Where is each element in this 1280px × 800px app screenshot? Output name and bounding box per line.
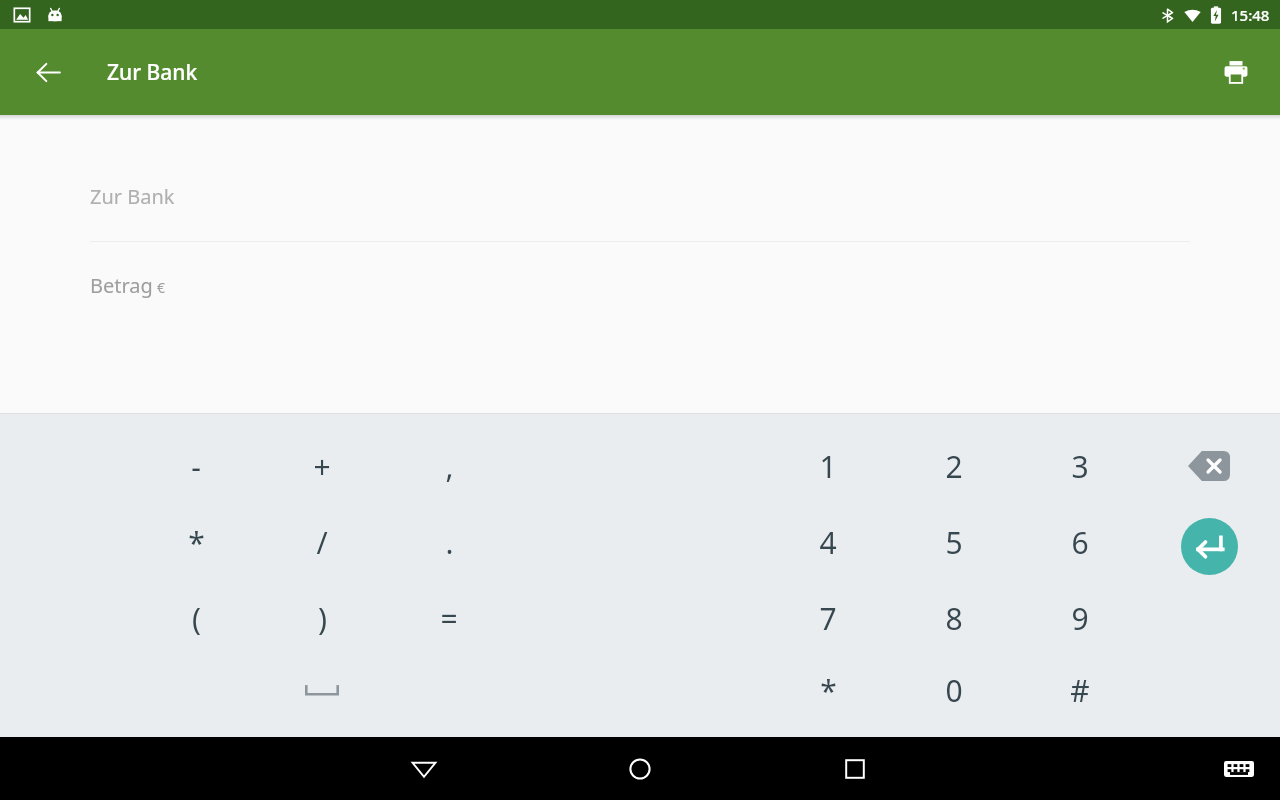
button[interactable]: Zur Bank <box>0 156 1280 236</box>
button[interactable]: ( <box>141 584 251 652</box>
button[interactable]: 6 <box>1025 508 1135 576</box>
button[interactable]: 5 <box>899 508 1009 576</box>
staticText: = <box>440 598 458 639</box>
button[interactable]: Home <box>606 737 674 800</box>
button[interactable]: 8 <box>899 584 1009 652</box>
button[interactable]: Back <box>390 737 458 800</box>
staticText: Zur Bank <box>107 58 198 87</box>
button[interactable]: Backspace <box>1159 432 1259 500</box>
button[interactable]: Hide keyboard <box>1210 740 1268 798</box>
button[interactable]: 7 <box>773 584 883 652</box>
staticText: , <box>445 446 454 487</box>
staticText: # <box>1070 670 1090 711</box>
staticText: 4 <box>819 522 837 563</box>
staticText: Betrag <box>90 272 153 299</box>
button[interactable]: - <box>141 432 251 500</box>
staticText: Zur Bank <box>90 183 175 210</box>
button[interactable]: Betrag <box>0 255 1280 315</box>
button[interactable]: 4 <box>773 508 883 576</box>
button[interactable]: 3 <box>1025 432 1135 500</box>
staticText: 7 <box>819 598 837 639</box>
button[interactable]: 1 <box>773 432 883 500</box>
staticText: 2 <box>945 446 963 487</box>
staticText: * <box>820 670 837 711</box>
button[interactable]: * <box>773 656 883 724</box>
staticText: 9 <box>1071 598 1089 639</box>
staticText: 1 <box>819 446 837 487</box>
button[interactable]: 2 <box>899 432 1009 500</box>
staticText: + <box>313 446 331 487</box>
button[interactable]: = <box>394 584 504 652</box>
button[interactable]: 9 <box>1025 584 1135 652</box>
staticText: 15:48 <box>1231 5 1270 25</box>
button[interactable]: Space <box>272 656 372 724</box>
button[interactable]: Recent apps <box>821 737 889 800</box>
button[interactable]: , <box>394 432 504 500</box>
button[interactable]: 0 <box>899 656 1009 724</box>
staticText: . <box>445 522 454 563</box>
button[interactable]: . <box>394 508 504 576</box>
staticText: 6 <box>1071 522 1089 563</box>
staticText: 0 <box>945 670 963 711</box>
button[interactable]: * <box>141 508 251 576</box>
button[interactable]: + <box>267 432 377 500</box>
button[interactable]: ) <box>267 584 377 652</box>
staticText: ( <box>192 598 201 639</box>
button[interactable]: Print <box>1212 48 1260 96</box>
staticText: 5 <box>945 522 963 563</box>
staticText: € <box>157 278 166 297</box>
button[interactable]: Enter <box>1175 512 1243 580</box>
staticText: 8 <box>945 598 963 639</box>
button[interactable]: / <box>267 508 377 576</box>
button[interactable]: Back <box>24 48 72 96</box>
staticText: - <box>191 446 201 487</box>
staticText: 3 <box>1071 446 1089 487</box>
staticText: ) <box>318 598 327 639</box>
staticText: / <box>316 522 328 563</box>
staticText: * <box>188 522 205 563</box>
button[interactable]: # <box>1025 656 1135 724</box>
